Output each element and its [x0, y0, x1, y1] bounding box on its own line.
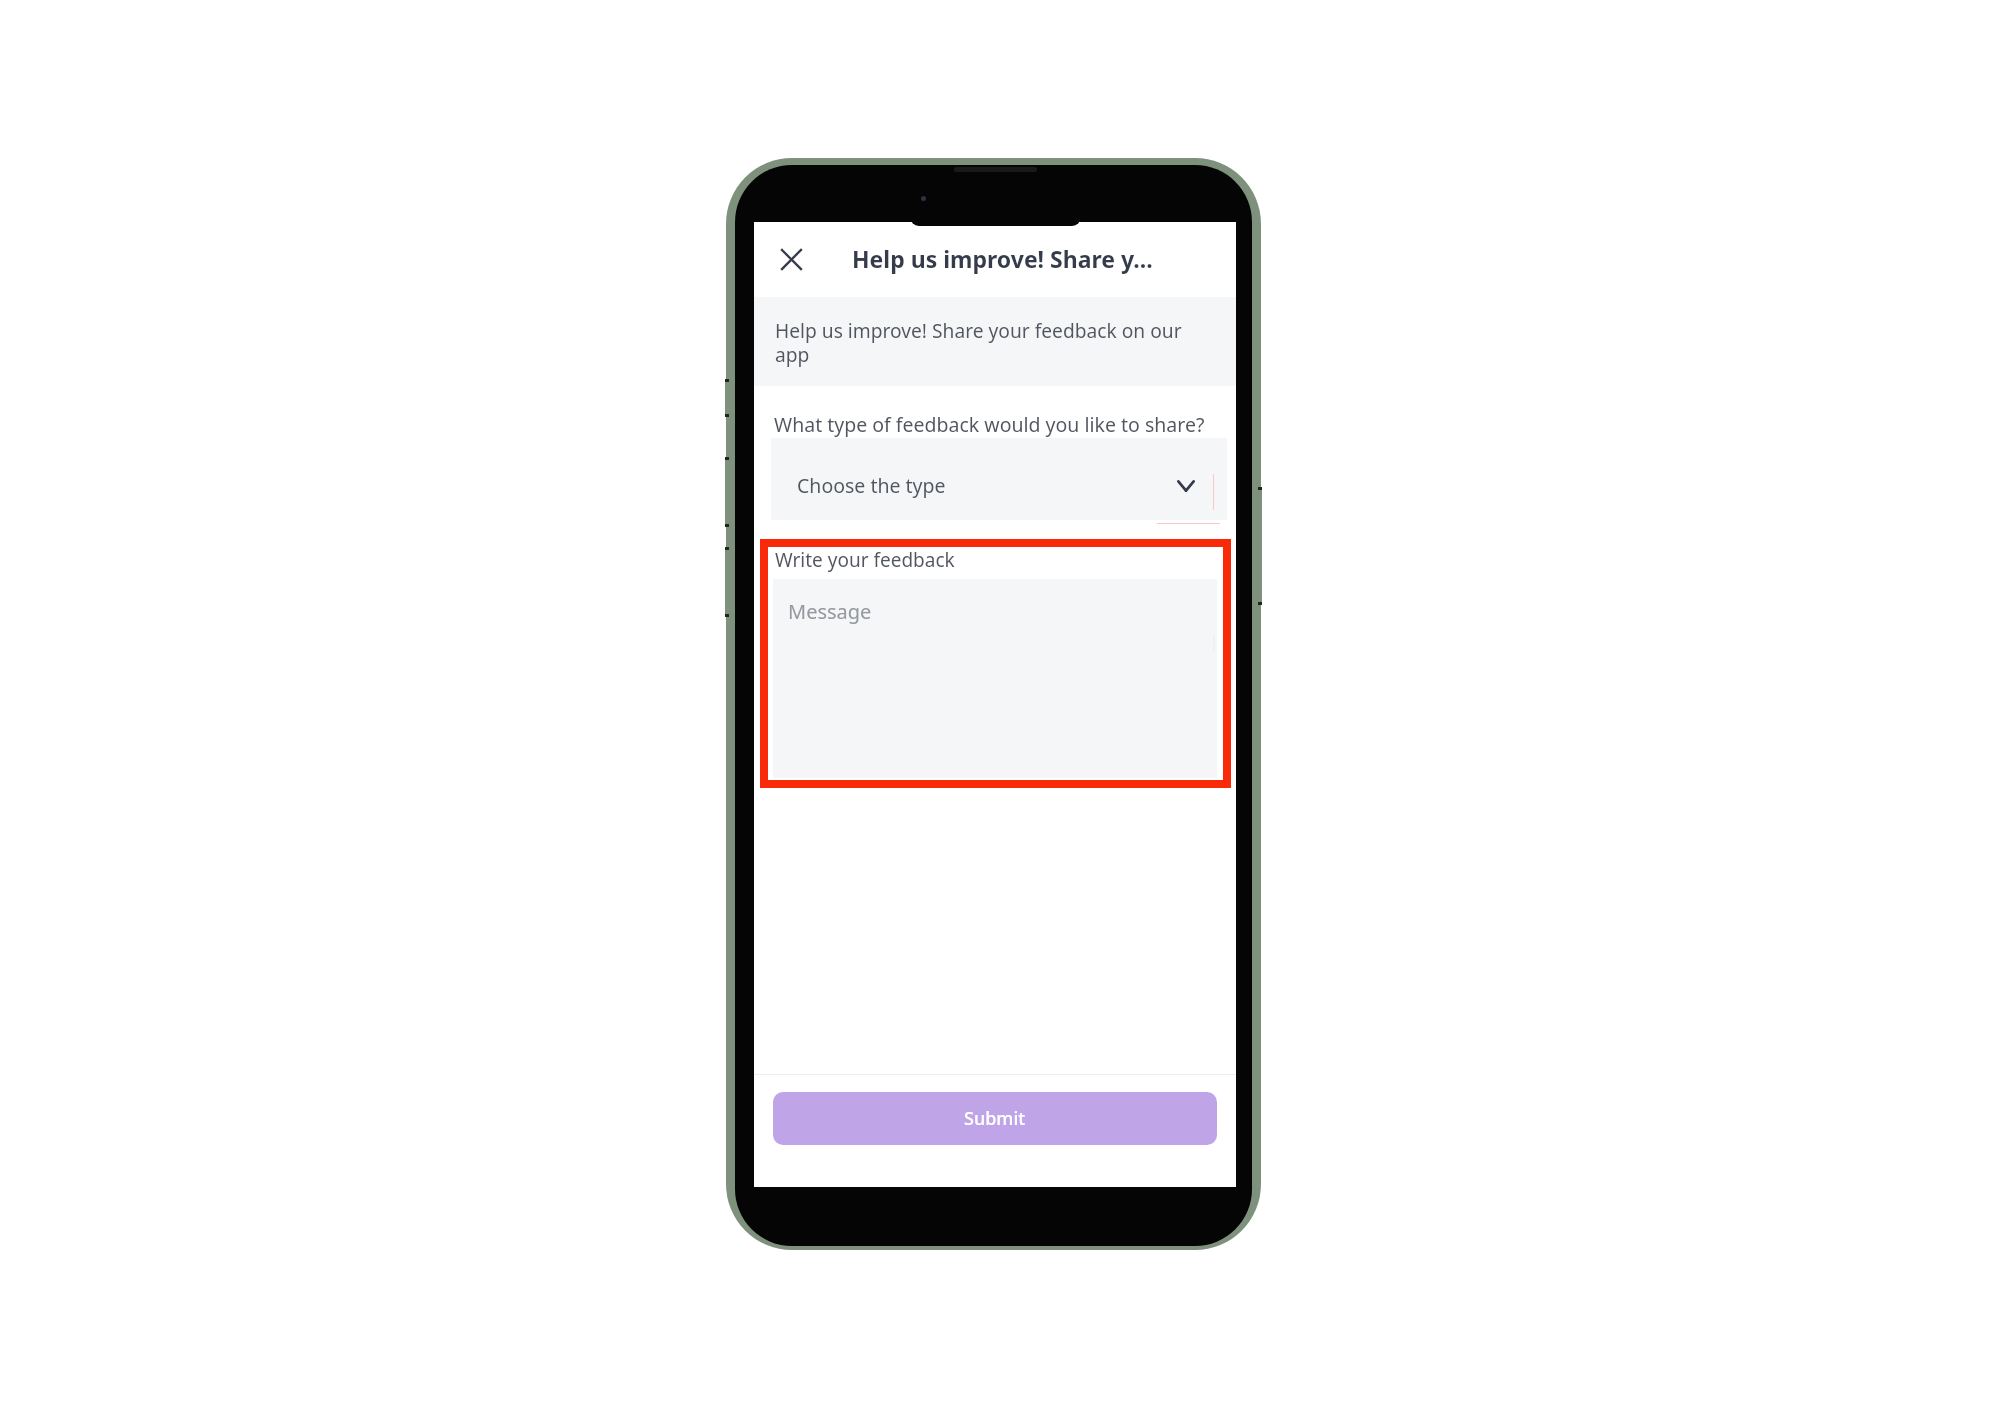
staticText: Write your feedback [775, 547, 955, 573]
staticText: Help us improve! Share y... [852, 243, 1153, 274]
staticText: What type of feedback would you like to … [774, 411, 1205, 438]
staticText: Submit [964, 1106, 1026, 1131]
button[interactable]: Choose the type [771, 438, 1227, 520]
staticText: Message [788, 598, 872, 625]
button[interactable]: Submit [773, 1092, 1217, 1145]
staticText: Help us improve! Share your feedback on … [775, 317, 1200, 367]
staticText: Choose the type [797, 472, 946, 499]
button[interactable]: Close [771, 239, 811, 279]
button[interactable]: Message [773, 579, 1217, 778]
